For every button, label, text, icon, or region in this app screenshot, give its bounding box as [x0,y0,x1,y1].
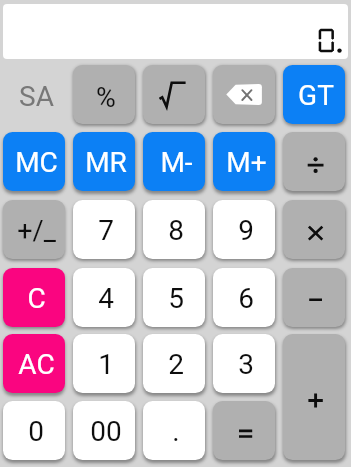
button[interactable]: +/_ [3,200,65,259]
button[interactable]: GT [283,65,345,124]
staticText: 0 [28,415,44,448]
staticText: SA [19,80,54,113]
staticText: 6 [238,282,254,315]
staticText: 3 [238,348,254,381]
button[interactable]: Minus [283,268,345,327]
staticText: 8 [168,214,184,247]
staticText: 7 [98,214,114,247]
button[interactable]: 8 [143,200,205,259]
button[interactable]: 6 [213,268,275,327]
button[interactable]: 9 [213,200,275,259]
button[interactable]: 00 [73,401,135,460]
button[interactable]: M- [143,132,205,191]
button[interactable]: AC [3,334,65,393]
button[interactable]: Multiply [283,200,345,259]
button[interactable]: 2 [143,334,205,393]
button[interactable]: 1 [73,334,135,393]
button[interactable]: . [143,401,205,460]
button[interactable]: SA [3,65,65,124]
button[interactable]: M+ [213,132,275,191]
staticText: MC [15,146,58,179]
staticText: C [27,282,46,315]
button[interactable]: Equals [213,401,275,460]
staticText: % [96,82,116,114]
staticText: . [172,415,180,448]
staticText: 5 [168,282,184,315]
button[interactable]: 7 [73,200,135,259]
button[interactable]: MR [73,132,135,191]
staticText: GT [298,79,334,112]
staticText: M+ [226,146,267,179]
staticText: AC [18,348,55,381]
button[interactable]: C [3,268,65,327]
button[interactable]: Plus [283,334,345,460]
staticText: MR [85,146,127,179]
button[interactable]: 0 [3,401,65,460]
button[interactable]: Divide [283,132,345,191]
button[interactable]: 4 [73,268,135,327]
staticText: M- [160,146,193,179]
staticText: 1 [98,348,114,381]
button[interactable]: 3 [213,334,275,393]
staticText: 00 [90,415,122,448]
staticText: 9 [238,214,254,247]
staticText: 4 [98,282,114,315]
button[interactable]: % [73,65,135,124]
button[interactable]: MC [3,132,65,191]
staticText: +/_ [17,215,56,247]
button[interactable]: Square root [143,65,205,124]
staticText: 2 [168,348,184,381]
button[interactable]: Backspace [213,65,275,124]
button[interactable]: 5 [143,268,205,327]
